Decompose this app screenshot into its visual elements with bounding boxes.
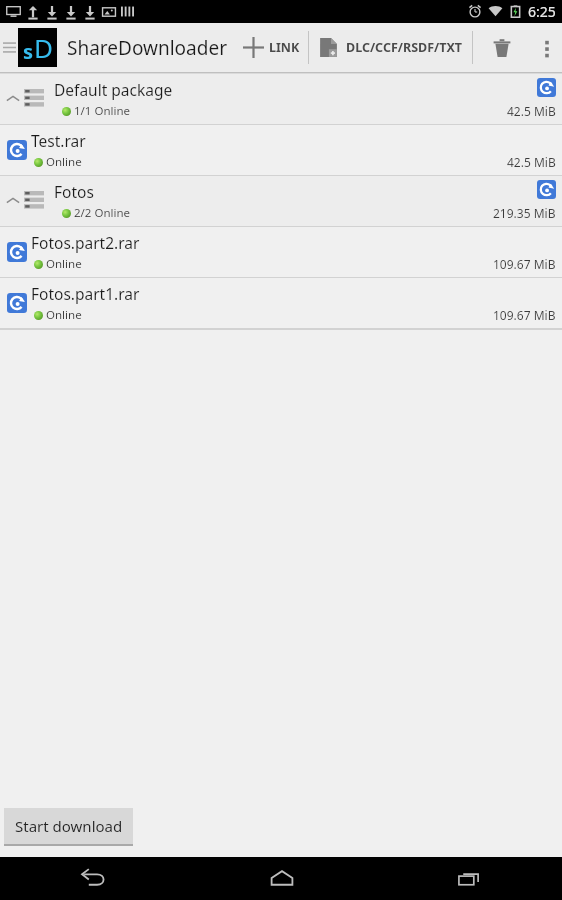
button[interactable]: Fotos.part2.rar — [0, 227, 562, 277]
staticText: 219.35 MiB — [493, 205, 556, 221]
button[interactable]: Back — [0, 857, 188, 900]
staticText: Online — [46, 307, 82, 323]
staticText: 42.5 MiB — [507, 154, 556, 170]
staticText: 109.67 MiB — [493, 307, 556, 323]
staticText: Fotos.part1.rar — [31, 283, 140, 304]
staticText: D — [34, 30, 53, 65]
button[interactable]: Default package — [0, 74, 562, 124]
button[interactable]: Recent apps — [375, 857, 562, 900]
button[interactable]: DLC/CCF/RSDF/TXT — [309, 23, 472, 72]
button[interactable]: LINK — [235, 23, 308, 72]
staticText: Fotos.part2.rar — [31, 232, 140, 253]
button[interactable]: Delete — [473, 23, 531, 72]
staticText: Online — [46, 256, 82, 272]
button[interactable]: Fotos — [0, 176, 562, 226]
staticText: 109.67 MiB — [493, 256, 556, 272]
staticText: Fotos — [54, 181, 94, 202]
staticText: DLC/CCF/RSDF/TXT — [346, 39, 463, 56]
staticText: ShareDownloader — [67, 35, 227, 61]
staticText: 6:25 — [528, 2, 556, 21]
staticText: Test.rar — [31, 130, 86, 151]
staticText: 1/1 Online — [74, 103, 131, 119]
staticText: s — [23, 38, 34, 65]
staticText: Start download — [15, 816, 123, 836]
button[interactable]: Home — [188, 857, 375, 900]
button[interactable]: Test.rar — [0, 125, 562, 175]
button[interactable]: More options — [531, 23, 562, 72]
staticText: LINK — [269, 39, 300, 56]
button[interactable]: Navigation drawer — [0, 23, 18, 72]
staticText: 42.5 MiB — [507, 103, 556, 119]
staticText: Default package — [54, 79, 173, 100]
staticText: 2/2 Online — [74, 205, 131, 221]
button[interactable]: Start download — [4, 808, 133, 844]
button[interactable]: Fotos.part1.rar — [0, 278, 562, 328]
button[interactable]: s — [18, 28, 235, 67]
staticText: Online — [46, 154, 82, 170]
